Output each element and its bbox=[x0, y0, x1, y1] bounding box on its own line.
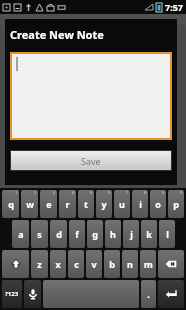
button[interactable]: f bbox=[69, 220, 85, 248]
staticText: j bbox=[130, 228, 133, 240]
staticText: 1 bbox=[15, 190, 18, 195]
button[interactable]: h bbox=[105, 220, 121, 248]
button[interactable]: x bbox=[50, 250, 66, 278]
staticText: Create New Note bbox=[10, 27, 104, 42]
button[interactable]: Backspace bbox=[158, 250, 184, 278]
button[interactable]: z bbox=[31, 250, 48, 278]
staticText: x bbox=[55, 258, 61, 270]
staticText: 2 bbox=[34, 190, 37, 195]
staticText: 0 bbox=[180, 190, 183, 195]
button[interactable]: i bbox=[132, 190, 148, 218]
button[interactable]: m bbox=[140, 250, 156, 278]
button[interactable]: Enter bbox=[158, 280, 184, 308]
staticText: k bbox=[146, 228, 152, 240]
staticText: h bbox=[110, 228, 116, 240]
button[interactable]: Voice input bbox=[24, 280, 41, 308]
staticText: b bbox=[109, 258, 115, 270]
staticText: q bbox=[8, 198, 14, 210]
staticText: u bbox=[119, 198, 125, 210]
staticText: 5 bbox=[90, 190, 93, 195]
staticText: e bbox=[46, 198, 52, 210]
staticText: y bbox=[101, 198, 107, 210]
button[interactable]: . bbox=[141, 280, 156, 308]
staticText: 3 bbox=[53, 190, 56, 195]
button[interactable]: y bbox=[96, 190, 112, 218]
staticText: s bbox=[37, 228, 42, 240]
staticText: z bbox=[37, 258, 42, 270]
button[interactable]: Save bbox=[11, 151, 171, 170]
button[interactable]: o bbox=[150, 190, 166, 218]
button[interactable]: p bbox=[168, 190, 184, 218]
button[interactable]: l bbox=[159, 220, 175, 248]
button[interactable]: q bbox=[2, 190, 19, 218]
button[interactable] bbox=[12, 54, 170, 138]
staticText: 9 bbox=[162, 190, 165, 195]
staticText: n bbox=[127, 258, 133, 270]
button[interactable]: n bbox=[122, 250, 138, 278]
button[interactable]: u bbox=[114, 190, 130, 218]
staticText: f bbox=[75, 228, 79, 240]
button[interactable]: j bbox=[123, 220, 139, 248]
button[interactable]: g bbox=[87, 220, 103, 248]
staticText: 7:57 bbox=[165, 1, 183, 13]
button[interactable]: d bbox=[50, 220, 67, 248]
button[interactable]: ?123 bbox=[2, 280, 22, 308]
button[interactable]: k bbox=[141, 220, 157, 248]
staticText: c bbox=[74, 258, 79, 270]
button[interactable] bbox=[43, 280, 139, 308]
button[interactable]: Shift bbox=[2, 250, 29, 278]
staticText: w bbox=[26, 198, 34, 210]
staticText: d bbox=[56, 228, 62, 240]
staticText: a bbox=[18, 228, 24, 240]
staticText: g bbox=[92, 228, 98, 240]
staticText: ?123 bbox=[5, 290, 19, 298]
staticText: t bbox=[84, 198, 88, 210]
staticText: p bbox=[173, 198, 179, 210]
staticText: . bbox=[147, 288, 150, 300]
staticText: 8 bbox=[144, 190, 147, 195]
staticText: 4 bbox=[72, 190, 75, 195]
staticText: r bbox=[65, 198, 70, 210]
staticText: 6 bbox=[108, 190, 111, 195]
button[interactable]: a bbox=[12, 220, 29, 248]
staticText: o bbox=[155, 198, 161, 210]
button[interactable]: b bbox=[104, 250, 120, 278]
button[interactable]: w bbox=[21, 190, 38, 218]
staticText: v bbox=[91, 258, 97, 270]
button[interactable]: r bbox=[59, 190, 76, 218]
button[interactable]: e bbox=[40, 190, 57, 218]
staticText: 7 bbox=[126, 190, 129, 195]
button[interactable]: t bbox=[78, 190, 94, 218]
staticText: i bbox=[139, 198, 142, 210]
button[interactable]: s bbox=[31, 220, 48, 248]
staticText: Save bbox=[81, 155, 101, 167]
staticText: l bbox=[166, 228, 169, 240]
button[interactable]: v bbox=[86, 250, 102, 278]
button[interactable]: c bbox=[68, 250, 84, 278]
staticText: m bbox=[144, 258, 153, 270]
